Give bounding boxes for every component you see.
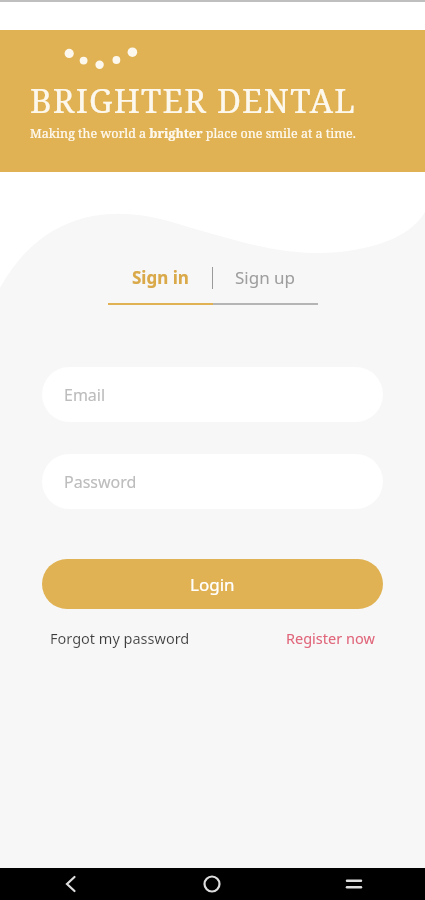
button[interactable]: Back	[0, 868, 141, 900]
button[interactable]: Password	[42, 454, 383, 509]
button[interactable]: Register now	[286, 624, 375, 652]
staticText: Login	[190, 573, 235, 596]
staticText: Forgot my password	[50, 628, 190, 648]
button[interactable]: Sign in	[108, 262, 212, 293]
staticText: Sign up	[235, 266, 296, 289]
button[interactable]: Forgot my password	[50, 624, 190, 652]
button[interactable]: Recent apps	[283, 868, 425, 900]
staticText: Password	[64, 471, 137, 493]
button[interactable]: Sign up	[213, 262, 318, 293]
button[interactable]: Home	[141, 868, 283, 900]
staticText: BRIGHTER DENTAL	[30, 78, 356, 123]
staticText: Making the world a brighter place one sm…	[30, 125, 356, 142]
staticText: Register now	[286, 628, 375, 648]
staticText: Sign in	[132, 266, 189, 289]
button[interactable]: Email	[42, 367, 383, 422]
button[interactable]: Login	[42, 559, 383, 609]
staticText: Email	[64, 384, 106, 406]
